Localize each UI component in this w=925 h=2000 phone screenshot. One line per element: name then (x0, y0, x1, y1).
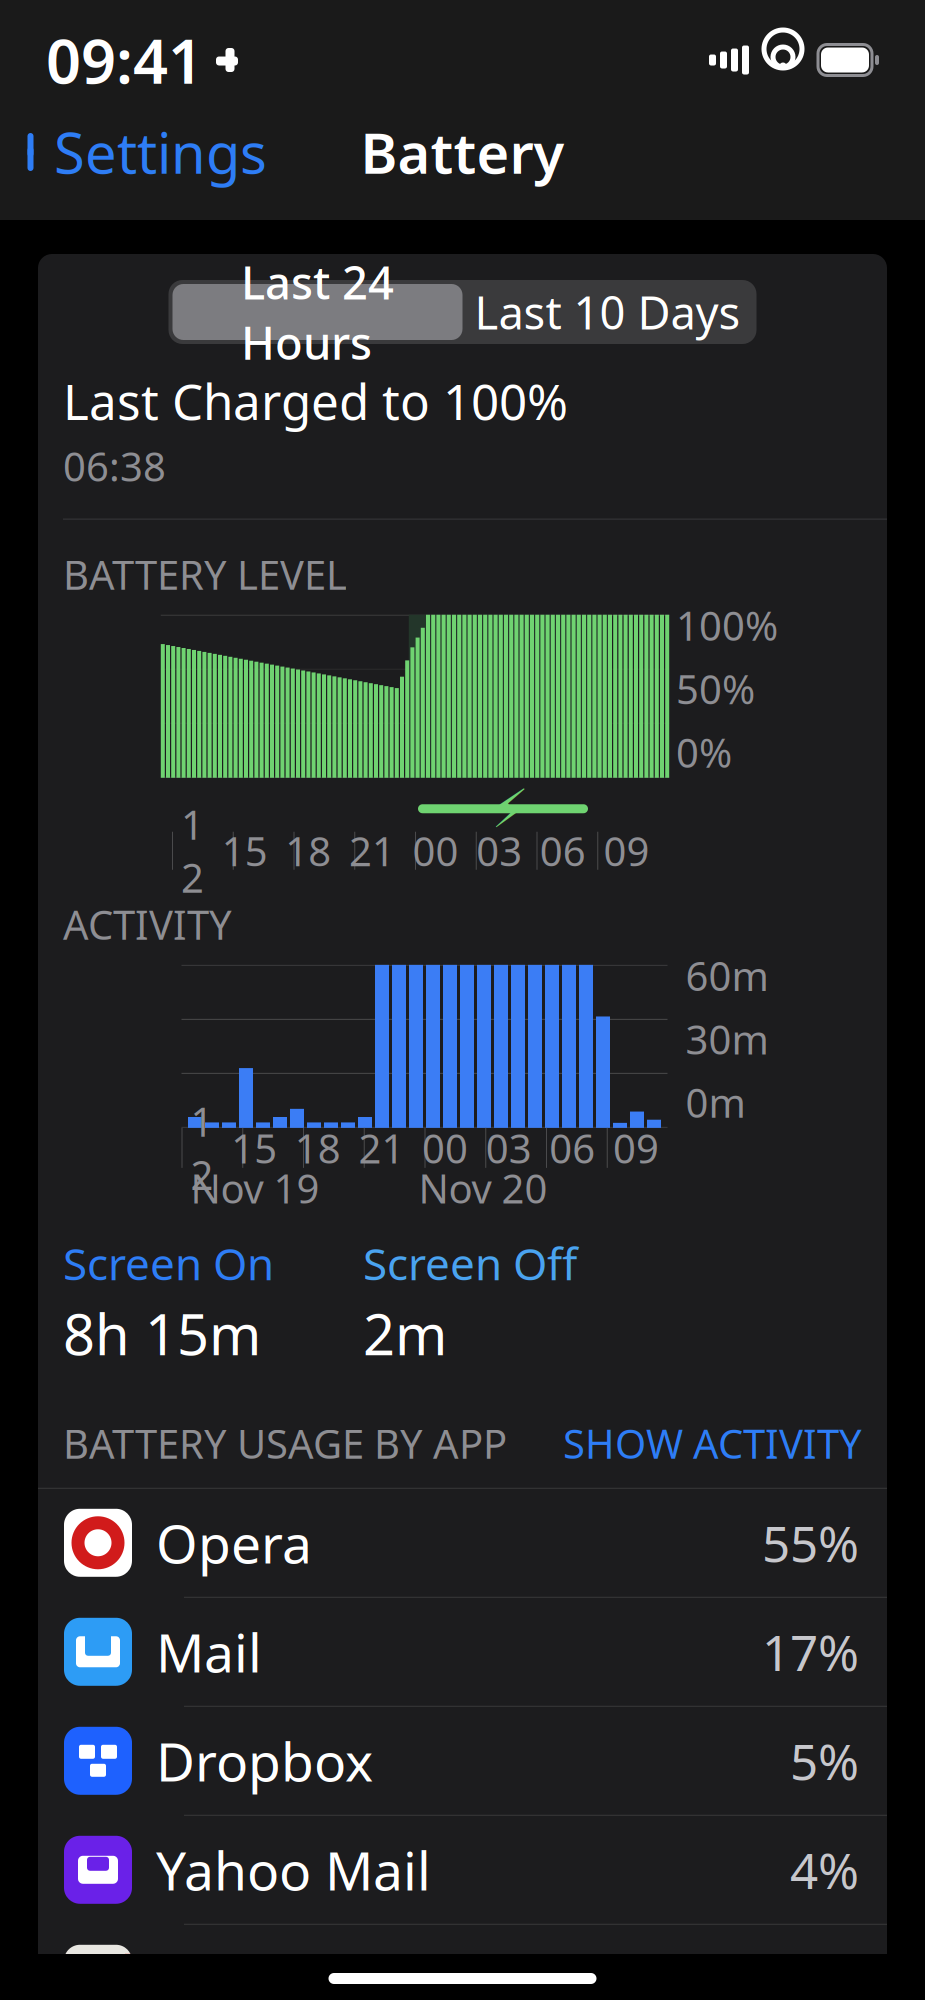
staticText: 5% (790, 1728, 859, 1793)
staticText: 09 (603, 824, 649, 877)
staticText: 4% (790, 1837, 859, 1902)
button[interactable]: Mail (38, 1598, 887, 1707)
button[interactable]: Settings (0, 103, 289, 201)
staticText: 0m (685, 1076, 745, 1129)
button[interactable]: Contacts (38, 1925, 887, 2000)
staticText: Settings (54, 115, 267, 189)
staticText: Screen On (63, 1234, 274, 1292)
staticText: 06:38 (63, 439, 166, 493)
staticText: 21 (358, 1121, 404, 1174)
staticText: 0% (676, 726, 732, 779)
staticText: 00 (412, 824, 458, 877)
staticText: 03 (476, 824, 522, 877)
staticText: 00 (422, 1121, 468, 1174)
staticText: Last Charged to 100% (63, 368, 568, 433)
staticText: 06 (549, 1121, 595, 1174)
staticText: 100% (676, 599, 778, 652)
staticText: Battery (360, 115, 564, 189)
staticText: 18 (285, 824, 331, 877)
staticText: Mail (156, 1616, 262, 1687)
staticText: 30m (685, 1012, 768, 1065)
staticText: 03 (486, 1121, 532, 1174)
button[interactable]: Yahoo Mail (38, 1816, 887, 1925)
staticText: 12 (190, 1095, 213, 1201)
staticText: SHOW ACTIVITY (563, 1417, 862, 1470)
staticText: 09:41 (46, 19, 203, 101)
staticText: 06 (540, 824, 586, 877)
button[interactable]: SHOW ACTIVITY (563, 1417, 862, 1470)
staticText: 60m (685, 949, 768, 1002)
staticText: Opera (156, 1507, 312, 1578)
staticText: 2m (363, 1296, 447, 1371)
staticText: ⚡︎ (491, 778, 528, 839)
staticText: 15 (231, 1121, 277, 1174)
staticText: ACTIVITY (63, 898, 232, 951)
staticText: 09 (613, 1121, 659, 1174)
staticText: BATTERY USAGE BY APP (63, 1417, 507, 1470)
staticText: Contacts (156, 1943, 375, 2000)
staticText: Dropbox (156, 1725, 373, 1796)
button[interactable]: Opera (38, 1489, 887, 1598)
staticText: 4% (790, 1946, 859, 2000)
staticText: 21 (349, 824, 395, 877)
button[interactable]: Last 10 Days (462, 284, 752, 340)
staticText: Yahoo Mail (156, 1834, 431, 1905)
staticText: Screen Off (363, 1234, 577, 1292)
button[interactable]: Last 24 Hours (172, 284, 462, 340)
staticText: 17% (762, 1619, 859, 1684)
staticText: Nov 20 (418, 1161, 547, 1214)
staticText: 55% (762, 1510, 859, 1575)
button[interactable]: Dropbox (38, 1707, 887, 1816)
staticText: 18 (295, 1121, 341, 1174)
staticText: BATTERY LEVEL (63, 548, 347, 601)
staticText: 8h 15m (63, 1296, 261, 1371)
staticText: 12 (181, 798, 204, 904)
staticText: 50% (676, 662, 755, 715)
staticText: Nov 19 (190, 1161, 319, 1214)
staticText: Last 24 Hours (241, 252, 394, 372)
staticText: 15 (222, 824, 268, 877)
staticText: Last 10 Days (474, 282, 740, 342)
